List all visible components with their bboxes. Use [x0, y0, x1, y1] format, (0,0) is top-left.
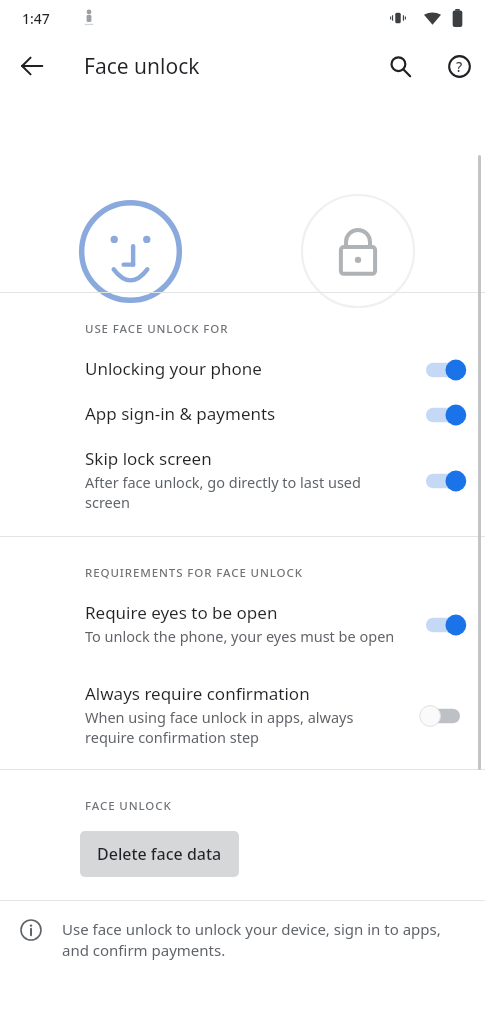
button[interactable] — [417, 696, 469, 736]
staticText: REQUIREMENTS FOR FACE UNLOCK — [85, 565, 303, 581]
staticText: App sign-in & payments — [85, 402, 276, 425]
button[interactable] — [417, 605, 469, 645]
button[interactable] — [417, 461, 469, 501]
staticText: After face unlock, go directly to last u… — [85, 472, 399, 512]
staticText: USE FACE UNLOCK FOR — [85, 321, 229, 337]
button[interactable]: Unlocking your phone — [0, 347, 485, 392]
staticText: Face unlock — [84, 52, 200, 81]
button[interactable]: Search — [376, 42, 424, 90]
button[interactable]: Back — [8, 42, 56, 90]
staticText: Delete face data — [97, 843, 222, 865]
staticText: 1:47 — [22, 9, 50, 28]
button[interactable]: Require eyes to be open — [0, 591, 485, 658]
staticText: Require eyes to be open — [85, 601, 278, 624]
staticText: When using face unlock in apps, always r… — [85, 707, 399, 747]
button[interactable]: Help — [435, 42, 483, 90]
button[interactable]: App sign-in & payments — [0, 392, 485, 437]
button[interactable]: Skip lock screen — [0, 437, 485, 524]
button[interactable] — [417, 350, 469, 390]
staticText: Unlocking your phone — [85, 357, 262, 380]
staticText: Skip lock screen — [85, 447, 212, 470]
staticText: ? — [456, 57, 463, 76]
button[interactable]: Delete face data — [80, 831, 239, 877]
button[interactable]: Always require confirmation — [0, 672, 485, 759]
staticText: FACE UNLOCK — [85, 798, 172, 814]
button[interactable] — [417, 395, 469, 435]
staticText: Always require confirmation — [85, 682, 310, 705]
staticText: To unlock the phone, your eyes must be o… — [85, 626, 395, 646]
staticText: Use face unlock to unlock your device, s… — [62, 919, 469, 961]
